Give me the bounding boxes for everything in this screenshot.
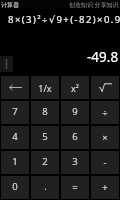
staticText: 7 — [12, 105, 18, 118]
button[interactable]: 0 — [1, 176, 29, 199]
button[interactable]: Backspace — [1, 76, 29, 99]
staticText: 0 — [12, 180, 18, 193]
button[interactable]: ÷ — [91, 101, 119, 124]
staticText: 创造知识 分享知识 — [69, 1, 119, 9]
staticText: 2 — [42, 155, 48, 168]
button[interactable]: = — [61, 176, 89, 199]
button[interactable]: 3 — [61, 151, 89, 174]
button[interactable]: 6 — [61, 126, 89, 149]
staticText: 3 — [72, 155, 78, 168]
staticText: 4 — [12, 130, 18, 143]
button[interactable]: 1/x — [31, 76, 59, 99]
staticText: 5 — [42, 130, 48, 143]
staticText: 1 — [12, 155, 18, 168]
button[interactable]: x² — [61, 76, 89, 99]
button[interactable]: 1 — [1, 151, 29, 174]
staticText: × — [102, 131, 108, 144]
staticText: = — [72, 181, 78, 194]
staticText: -49.8 — [87, 48, 119, 66]
staticText: + — [102, 181, 108, 194]
button[interactable]: + — [91, 176, 119, 199]
staticText: - — [103, 156, 107, 169]
staticText: 8 — [42, 105, 48, 118]
button[interactable]: 9 — [61, 101, 89, 124]
staticText: ÷ — [102, 106, 108, 119]
button[interactable]: × — [91, 126, 119, 149]
staticText: 8×(3)²÷√9+(-82)×0.9 — [8, 13, 120, 26]
button[interactable]: . — [31, 176, 59, 199]
staticText: 6 — [72, 130, 78, 143]
button[interactable]: History — [0, 56, 13, 72]
staticText: 1/x — [38, 82, 52, 94]
staticText: x² — [71, 82, 79, 94]
button[interactable]: Square root — [91, 76, 119, 99]
button[interactable]: 4 — [1, 126, 29, 149]
button[interactable]: 5 — [31, 126, 59, 149]
staticText: 9 — [72, 105, 78, 118]
staticText: . — [44, 180, 47, 193]
button[interactable]: 2 — [31, 151, 59, 174]
staticText: 计算器 — [1, 1, 19, 9]
button[interactable]: 7 — [1, 101, 29, 124]
button[interactable]: - — [91, 151, 119, 174]
button[interactable]: 8 — [31, 101, 59, 124]
